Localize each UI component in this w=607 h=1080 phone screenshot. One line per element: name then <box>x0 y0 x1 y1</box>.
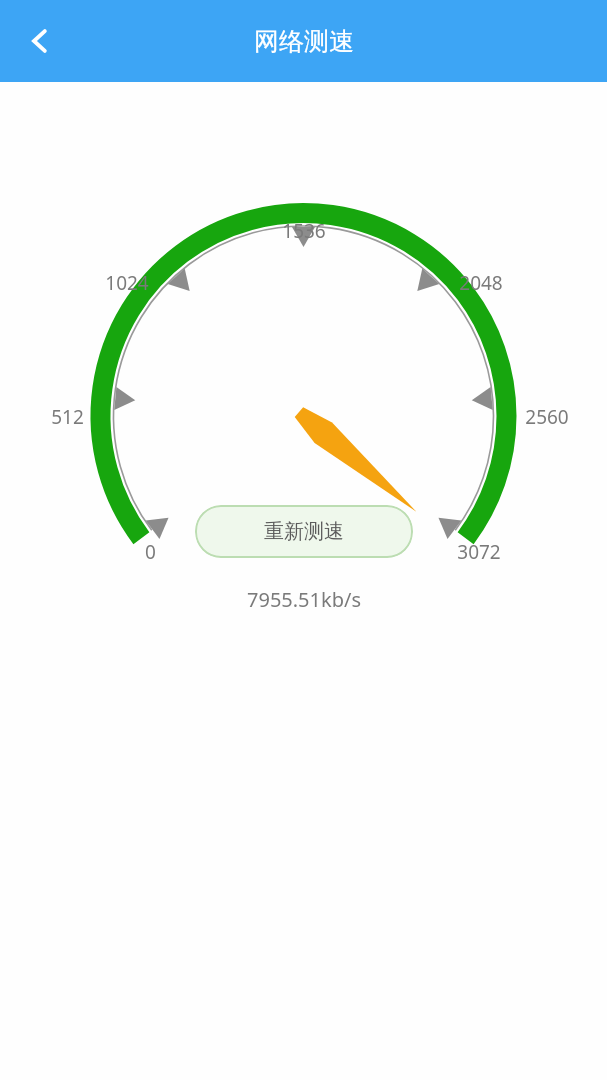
staticText: 2560 <box>525 404 569 430</box>
button[interactable]: 重新测速 <box>195 505 413 558</box>
staticText: 1536 <box>282 218 326 244</box>
staticText: 1024 <box>105 270 149 296</box>
staticText: 3072 <box>457 539 501 565</box>
staticText: 网络测速 <box>254 26 354 57</box>
staticText: 重新测速 <box>264 519 344 544</box>
staticText: 7955.51kb/s <box>247 586 361 613</box>
button[interactable]: Back <box>10 11 70 71</box>
staticText: 2048 <box>459 270 503 296</box>
staticText: 0 <box>145 539 156 565</box>
staticText: 512 <box>51 404 84 430</box>
